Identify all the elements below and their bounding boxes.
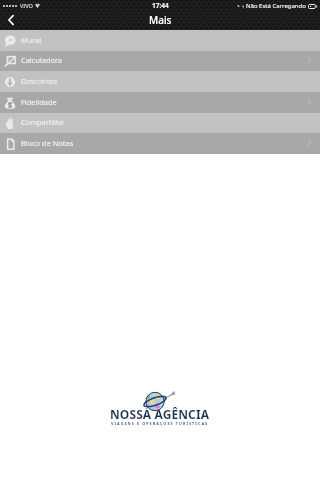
staticText: Descontos: [21, 76, 58, 86]
staticText: VIAGENS E OPERAÇÕES TURÍSTICAS: [111, 421, 209, 426]
button[interactable]: Calculadora: [0, 51, 320, 71]
button[interactable]: Voltar: [0, 11, 20, 30]
button[interactable]: Bloco de Notas: [0, 133, 320, 154]
staticText: Não Está Carregando: [246, 2, 306, 10]
staticText: Fidelidade: [21, 97, 57, 107]
staticText: Mais: [149, 13, 172, 27]
staticText: Calculadora: [21, 55, 62, 65]
staticText: 17:44: [152, 1, 169, 10]
staticText: VIVO: [20, 2, 33, 10]
staticText: Compartilhe: [21, 117, 65, 127]
button[interactable]: Mural: [0, 30, 320, 51]
staticText: Mural: [21, 35, 42, 45]
staticText: Bloco de Notas: [21, 138, 74, 148]
button[interactable]: Descontos: [0, 71, 320, 92]
button[interactable]: Compartilhe: [0, 113, 320, 133]
button[interactable]: Fidelidade: [0, 92, 320, 113]
staticText: NOSSA AGÊNCIA: [110, 406, 210, 422]
